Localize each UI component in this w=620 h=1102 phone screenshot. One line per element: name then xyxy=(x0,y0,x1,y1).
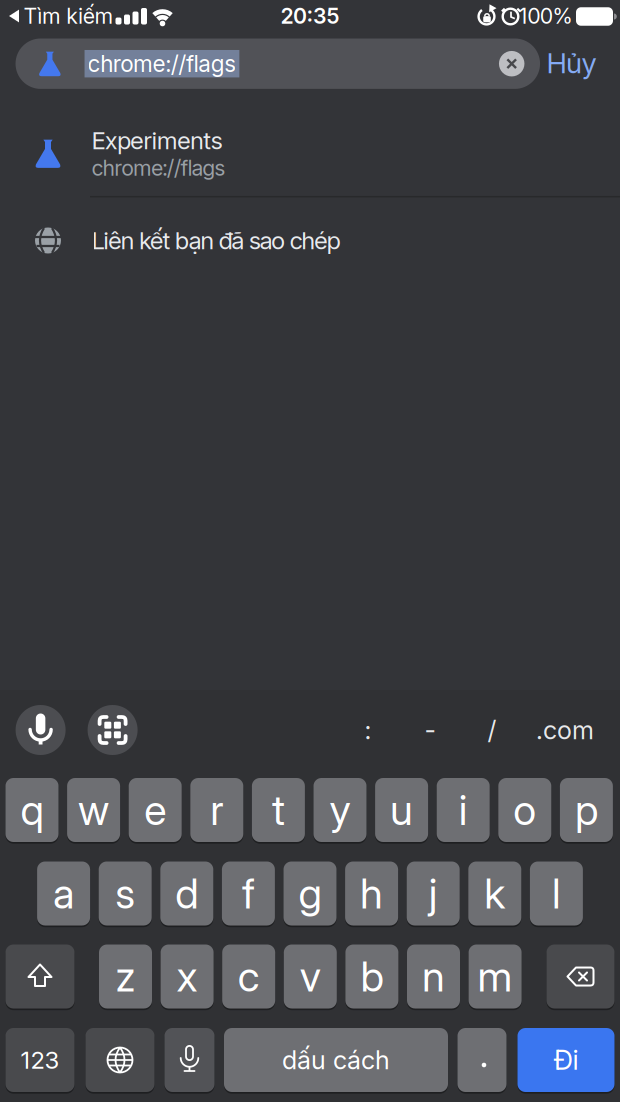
staticText: v xyxy=(300,951,321,1001)
button[interactable]: : xyxy=(364,715,371,745)
staticText: 20:35 xyxy=(280,3,339,29)
button[interactable]: o xyxy=(498,778,551,844)
button[interactable]: h xyxy=(345,861,398,927)
button[interactable]: Liên kết bạn đã sao chép xyxy=(0,197,620,284)
button[interactable] xyxy=(88,705,138,755)
staticText: 100% xyxy=(519,3,573,29)
staticText: p xyxy=(575,785,598,835)
staticText: t xyxy=(272,785,285,835)
staticText: e xyxy=(144,785,166,835)
staticText: g xyxy=(298,868,321,918)
button[interactable]: x xyxy=(161,944,214,1010)
button[interactable]: Experiments xyxy=(0,111,620,196)
button[interactable]: r xyxy=(190,778,243,844)
staticText: o xyxy=(513,785,536,835)
staticText: Liên kết bạn đã sao chép xyxy=(91,226,341,255)
staticText: Đi xyxy=(553,1044,578,1076)
button[interactable]: c xyxy=(222,944,275,1010)
button[interactable]: f xyxy=(222,861,275,927)
button[interactable] xyxy=(85,1028,154,1094)
button[interactable]: e xyxy=(129,778,182,844)
staticText: y xyxy=(329,785,350,835)
staticText: z xyxy=(115,951,135,1001)
button[interactable]: .com xyxy=(536,715,594,745)
button[interactable]: z xyxy=(99,944,152,1010)
staticText: 123 xyxy=(20,1045,59,1074)
staticText: Tìm kiếm xyxy=(23,3,113,29)
staticText: q xyxy=(20,785,43,835)
button[interactable]: q xyxy=(5,778,58,844)
staticText: i xyxy=(459,785,468,835)
button[interactable]: dấu cách xyxy=(224,1028,448,1094)
staticText: - xyxy=(424,715,435,745)
staticText: dấu cách xyxy=(282,1045,390,1075)
staticText: Experiments xyxy=(91,126,222,155)
staticText: x xyxy=(177,951,198,1001)
button[interactable]: n xyxy=(407,944,460,1010)
button[interactable]: - xyxy=(424,715,435,745)
button[interactable] xyxy=(16,705,66,755)
staticText: j xyxy=(429,868,438,918)
button[interactable]: m xyxy=(469,944,522,1010)
staticText: c xyxy=(238,951,260,1001)
staticText: .com xyxy=(536,715,594,745)
staticText: r xyxy=(210,785,223,835)
button[interactable]: / xyxy=(487,715,496,745)
staticText: / xyxy=(487,715,496,745)
staticText: s xyxy=(115,868,135,918)
staticText: a xyxy=(53,868,74,918)
staticText: w xyxy=(78,785,109,835)
button[interactable]: 123 xyxy=(5,1028,74,1094)
button[interactable]: k xyxy=(468,861,521,927)
staticText: n xyxy=(422,951,445,1001)
button[interactable] xyxy=(5,944,74,1010)
button[interactable]: v xyxy=(284,944,337,1010)
staticText: d xyxy=(175,868,198,918)
button[interactable]: u xyxy=(375,778,428,844)
staticText: f xyxy=(242,868,255,918)
button[interactable]: Hủy xyxy=(547,46,596,80)
button[interactable]: Đi xyxy=(517,1028,614,1094)
button[interactable]: t xyxy=(252,778,305,844)
button[interactable]: y xyxy=(313,778,366,844)
staticText: m xyxy=(478,951,513,1001)
button[interactable] xyxy=(546,944,614,1010)
button[interactable] xyxy=(457,1028,506,1094)
button[interactable]: d xyxy=(160,861,213,927)
staticText: h xyxy=(360,868,383,918)
staticText: : xyxy=(364,715,371,745)
staticText: Hủy xyxy=(547,46,596,80)
staticText: u xyxy=(390,785,413,835)
button[interactable]: a xyxy=(37,861,90,927)
button[interactable]: g xyxy=(283,861,336,927)
staticText: l xyxy=(552,868,561,918)
staticText: chrome://flags xyxy=(88,50,236,77)
button[interactable]: p xyxy=(560,778,613,844)
button[interactable]: chrome://flags xyxy=(16,38,540,89)
button[interactable] xyxy=(164,1028,214,1094)
staticText: b xyxy=(360,951,383,1001)
button[interactable]: s xyxy=(99,861,152,927)
button[interactable]: b xyxy=(345,944,398,1010)
button[interactable]: l xyxy=(530,861,583,927)
button[interactable]: j xyxy=(407,861,460,927)
button[interactable]: w xyxy=(67,778,120,844)
staticText: k xyxy=(484,868,505,918)
button[interactable]: i xyxy=(437,778,490,844)
staticText: chrome://flags xyxy=(91,155,225,181)
